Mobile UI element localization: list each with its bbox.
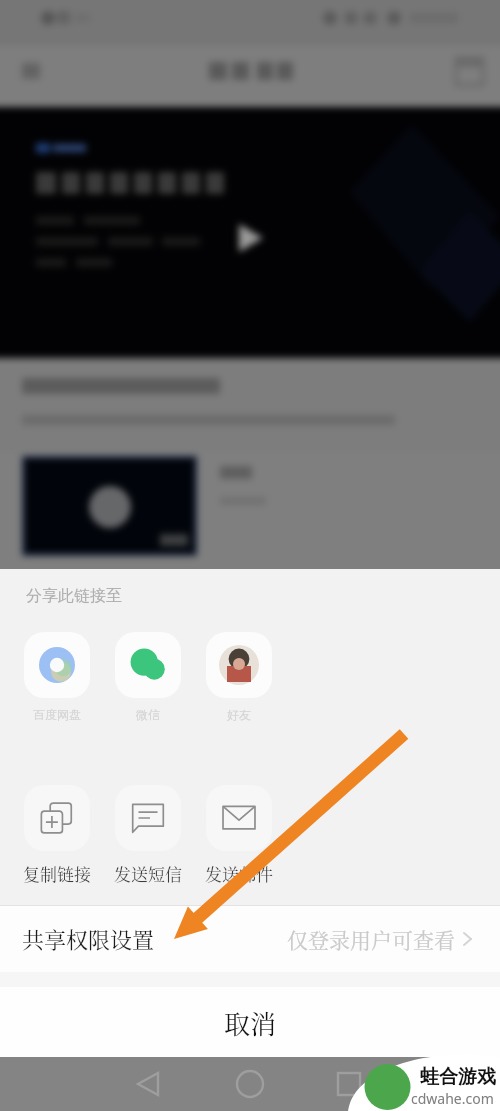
button[interactable]: 百度网盘 bbox=[11, 632, 102, 722]
staticText: cdwahe.com bbox=[411, 1089, 494, 1108]
staticText: 百度网盘 bbox=[33, 707, 81, 722]
button[interactable]: 微信 bbox=[102, 632, 193, 722]
staticText: 发送邮件 bbox=[205, 861, 273, 885]
staticText: 微信 bbox=[136, 707, 160, 722]
button[interactable]: 发送邮件 bbox=[193, 785, 284, 885]
staticText: 复制链接 bbox=[23, 861, 91, 885]
staticText: 仅登录用户可查看 bbox=[287, 924, 455, 954]
button[interactable]: 复制链接 bbox=[11, 785, 102, 885]
button[interactable]: 共享权限设置 bbox=[0, 906, 500, 972]
button[interactable]: 发送短信 bbox=[102, 785, 193, 885]
staticText: 好友 bbox=[227, 707, 251, 722]
staticText: 发送短信 bbox=[114, 861, 182, 885]
staticText: 蛙合游戏 bbox=[420, 1065, 496, 1089]
button[interactable]: Home bbox=[225, 1059, 275, 1109]
button[interactable]: 取消 bbox=[0, 987, 500, 1057]
staticText: 取消 bbox=[224, 1004, 277, 1041]
button[interactable]: Back bbox=[124, 1059, 174, 1109]
staticText: 共享权限设置 bbox=[22, 923, 155, 955]
button[interactable]: Recents bbox=[324, 1059, 374, 1109]
button[interactable]: 好友 bbox=[193, 632, 284, 722]
staticText: 分享此链接至 bbox=[26, 586, 122, 606]
